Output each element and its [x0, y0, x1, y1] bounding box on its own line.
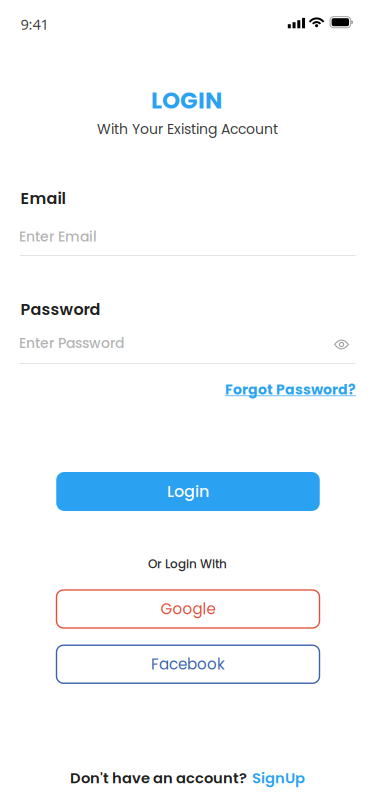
- staticText: Google: [160, 598, 215, 620]
- staticText: LOGIN: [151, 84, 222, 117]
- button[interactable]: SignUp: [252, 768, 305, 788]
- button[interactable]: Enter Email: [20, 215, 355, 256]
- staticText: Enter Email: [19, 227, 97, 246]
- staticText: SignUp: [252, 768, 305, 788]
- staticText: Email: [20, 187, 65, 210]
- staticText: 9:41: [20, 14, 48, 34]
- staticText: Or Login With: [148, 556, 227, 572]
- staticText: Password: [20, 298, 100, 321]
- button[interactable]: Enter Password: [20, 322, 355, 363]
- button[interactable]: Facebook: [56, 645, 319, 683]
- staticText: Login: [167, 480, 209, 503]
- staticText: Don't have an account?: [70, 768, 247, 788]
- button[interactable]: Forgot Password?: [225, 380, 356, 399]
- button[interactable]: Login: [56, 472, 320, 511]
- staticText: Facebook: [151, 654, 225, 675]
- button[interactable]: Google: [56, 590, 319, 628]
- staticText: Enter Password: [19, 333, 124, 353]
- staticText: With Your Existing Account: [97, 119, 278, 139]
- staticText: Forgot Password?: [225, 380, 356, 399]
